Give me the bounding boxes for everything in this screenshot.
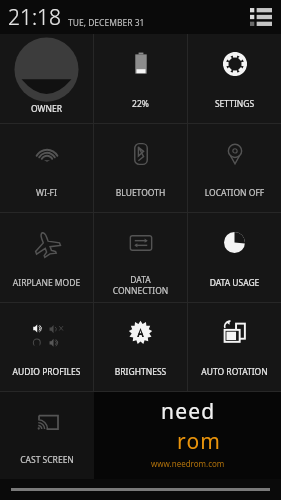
button[interactable]: WI-FI bbox=[0, 124, 93, 212]
staticText: need bbox=[161, 397, 216, 426]
button[interactable]: DATA USAGE bbox=[188, 213, 281, 302]
button[interactable]: DATA CONNECTION bbox=[94, 213, 187, 302]
button[interactable]: AIRPLANE MODE bbox=[0, 213, 93, 302]
button[interactable]: BRIGHTNESS bbox=[94, 303, 187, 391]
staticText: TUE, DECEMBER 31 bbox=[68, 17, 145, 29]
staticText: BLUETOOTH bbox=[96, 187, 185, 199]
staticText: AIRPLANE MODE bbox=[2, 277, 91, 289]
staticText: LOCATION OFF bbox=[190, 187, 279, 199]
staticText: 21:18 bbox=[8, 3, 62, 32]
button[interactable]: AUTO ROTATION bbox=[188, 303, 281, 391]
staticText: OWNER bbox=[31, 103, 62, 115]
button[interactable]: Notifications bbox=[250, 6, 272, 28]
staticText: www.needrom.com bbox=[151, 458, 225, 469]
button[interactable]: LOCATION OFF bbox=[188, 124, 281, 212]
staticText: DATA CONNECTION bbox=[96, 274, 185, 296]
button[interactable]: AUDIO PROFILES bbox=[0, 303, 93, 391]
staticText: AUDIO PROFILES bbox=[2, 366, 91, 378]
staticText: WI-FI bbox=[2, 187, 91, 199]
staticText: CAST SCREEN bbox=[2, 454, 92, 466]
staticText: 22% bbox=[96, 98, 185, 110]
staticText: SETTINGS bbox=[190, 98, 279, 110]
staticText: rom bbox=[177, 427, 222, 456]
button[interactable]: SETTINGS bbox=[188, 34, 281, 123]
staticText: BRIGHTNESS bbox=[96, 366, 185, 378]
button[interactable]: 22% bbox=[94, 34, 187, 123]
button[interactable]: BLUETOOTH bbox=[94, 124, 187, 212]
staticText: AUTO ROTATION bbox=[190, 366, 279, 378]
button[interactable]: CAST SCREEN bbox=[0, 392, 94, 479]
staticText: DATA USAGE bbox=[190, 277, 279, 289]
button[interactable]: OWNER bbox=[0, 34, 93, 123]
